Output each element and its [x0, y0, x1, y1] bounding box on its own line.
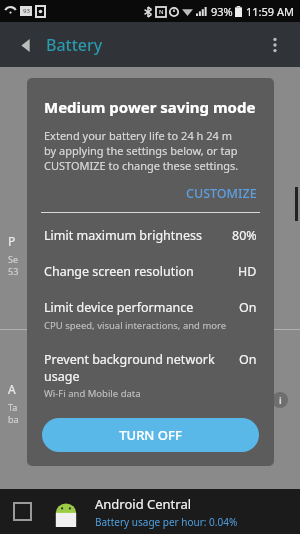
staticText: Battery usage per hour: 0.04%	[95, 515, 238, 529]
button[interactable]: More options	[260, 30, 290, 60]
button[interactable]: Change screen resolution	[44, 263, 257, 280]
staticText: Medium power saving mode	[44, 97, 256, 117]
staticText: Extend your battery life to 24 h 24 m by…	[44, 128, 239, 173]
button[interactable]: TURN OFF	[42, 418, 259, 452]
staticText: Change screen resolution	[44, 263, 194, 280]
staticText: Wi-Fi and Mobile data	[44, 387, 141, 400]
button[interactable]: CUSTOMIZE	[27, 185, 257, 202]
button[interactable]: Info	[272, 392, 288, 408]
staticText: CPU speed, visual interactions, and more	[44, 319, 227, 332]
staticText: N	[159, 8, 164, 16]
staticText: On	[239, 299, 257, 316]
staticText: 93%	[211, 4, 233, 19]
staticText: Android Central	[95, 495, 192, 513]
button[interactable]	[14, 503, 31, 520]
button[interactable]: Limit maximum brightness	[44, 227, 257, 244]
staticText: Limit maximum brightness	[44, 227, 203, 244]
staticText: Ta	[8, 401, 18, 413]
staticText: i	[279, 394, 282, 406]
staticText: Limit device performance	[44, 299, 194, 316]
staticText: ba	[8, 413, 19, 425]
staticText: 80%	[232, 227, 257, 244]
staticText: Prevent background network usage	[44, 351, 215, 384]
staticText: CUSTOMIZE	[186, 185, 257, 202]
staticText: TURN OFF	[119, 426, 182, 444]
button[interactable]: Limit device performance	[44, 299, 257, 332]
button[interactable]: Prevent background network usage	[44, 351, 257, 400]
staticText: P	[8, 233, 18, 249]
staticText: On	[239, 351, 257, 368]
staticText: 11:59 AM	[246, 4, 294, 19]
staticText: A	[8, 381, 16, 397]
staticText: HD	[238, 263, 257, 280]
staticText: 93	[23, 7, 30, 15]
staticText: Se	[8, 253, 19, 265]
staticText: Battery	[46, 34, 103, 56]
button[interactable]: Back	[10, 30, 40, 60]
staticText: 53	[8, 265, 19, 277]
